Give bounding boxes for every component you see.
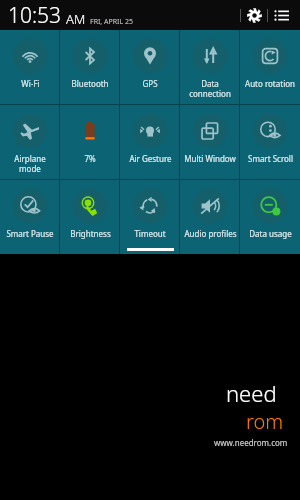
button[interactable]: Timeout — [120, 180, 180, 254]
button[interactable]: Airplane mode — [0, 105, 60, 179]
staticText: Audio profiles — [184, 228, 237, 239]
staticText: Wi-Fi — [21, 78, 40, 89]
staticText: www.needrom.com — [214, 437, 288, 448]
button[interactable]: Data connection — [180, 30, 240, 104]
staticText: FRI, APRIL 25 — [90, 17, 133, 27]
staticText: Multi Window — [184, 153, 236, 164]
staticText: Brightness — [70, 228, 111, 239]
button[interactable]: Smart Scroll — [240, 105, 300, 179]
staticText: 7% — [84, 153, 96, 164]
staticText: AM — [66, 10, 86, 28]
staticText: Air Gesture — [129, 153, 172, 164]
button[interactable]: Wi-Fi — [0, 30, 60, 104]
button[interactable]: Notifications list — [268, 2, 294, 28]
staticText: Timeout — [134, 228, 166, 239]
button[interactable]: Audio profiles — [180, 180, 240, 254]
button[interactable]: Auto rotation — [240, 30, 300, 104]
button[interactable]: Settings — [241, 2, 267, 28]
staticText: Auto rotation — [245, 78, 295, 89]
staticText: Smart Scroll — [248, 153, 293, 164]
button[interactable]: Data usage — [240, 180, 300, 254]
button[interactable]: 7% — [60, 105, 120, 179]
staticText: GPS — [142, 78, 158, 89]
staticText: rom — [246, 408, 284, 435]
staticText: Data connection — [189, 78, 231, 99]
button[interactable]: Brightness — [60, 180, 120, 254]
staticText: Smart Pause — [6, 228, 54, 239]
staticText: need — [226, 378, 277, 408]
staticText: Data usage — [249, 228, 292, 239]
staticText: Airplane mode — [14, 153, 46, 174]
button[interactable]: Bluetooth — [60, 30, 120, 104]
staticText: 10:53 — [8, 1, 62, 30]
button[interactable]: Smart Pause — [0, 180, 60, 254]
button[interactable]: Multi Window — [180, 105, 240, 179]
button[interactable]: GPS — [120, 30, 180, 104]
staticText: Bluetooth — [71, 78, 109, 89]
button[interactable]: Air Gesture — [120, 105, 180, 179]
